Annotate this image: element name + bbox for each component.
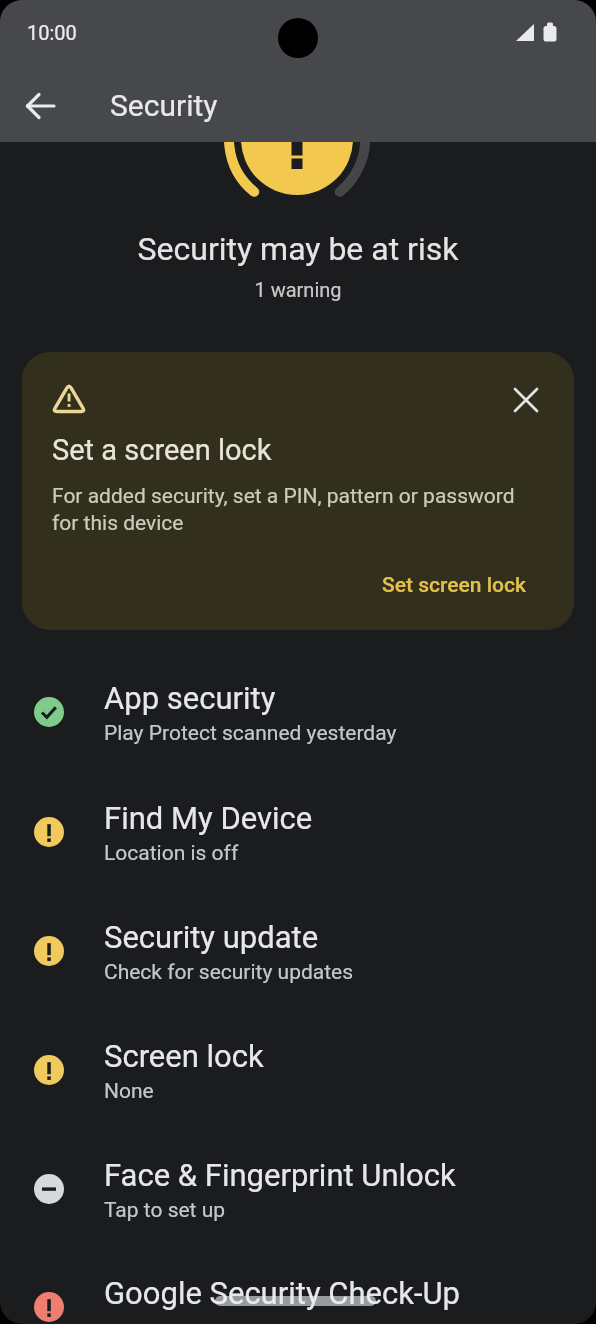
staticText: 1 warning xyxy=(0,278,596,301)
button[interactable]: Security update xyxy=(0,892,596,1011)
staticText: App security xyxy=(104,680,276,716)
button[interactable]: Screen lock xyxy=(0,1011,596,1130)
button[interactable]: Find My Device xyxy=(0,773,596,892)
staticText: None xyxy=(104,1079,154,1104)
staticText: Check for security updates xyxy=(104,960,354,985)
button[interactable]: Set screen lock xyxy=(348,559,560,611)
button[interactable] xyxy=(504,378,548,422)
staticText: Location is off xyxy=(104,841,239,866)
staticText: Security update xyxy=(104,919,319,955)
staticText: Find My Device xyxy=(104,800,313,836)
button[interactable]: Face & Fingerprint Unlock xyxy=(0,1130,596,1249)
staticText: Screen lock xyxy=(104,1038,264,1074)
staticText: Face & Fingerprint Unlock xyxy=(104,1157,456,1193)
button[interactable]: App security xyxy=(0,653,596,772)
button[interactable]: Google Security Check-Up xyxy=(0,1248,596,1324)
staticText: 10:00 xyxy=(27,21,77,44)
staticText: Tap to set up xyxy=(104,1198,226,1223)
staticText: Set a screen lock xyxy=(52,433,272,467)
staticText: Security xyxy=(110,88,218,123)
staticText: Google Security Check-Up xyxy=(104,1275,460,1311)
button[interactable] xyxy=(14,79,68,133)
staticText: Set screen lock xyxy=(382,573,526,598)
staticText: For added security, set a PIN, pattern o… xyxy=(52,484,515,535)
staticText: Play Protect scanned yesterday xyxy=(104,721,397,746)
staticText: Security may be at risk xyxy=(0,230,596,268)
